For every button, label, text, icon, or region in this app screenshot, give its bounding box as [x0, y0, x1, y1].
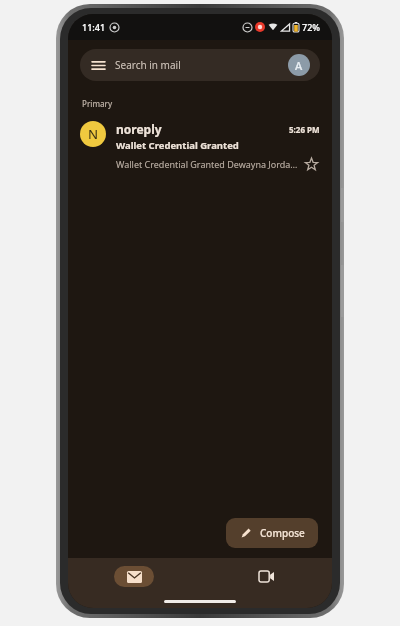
- staticText: Wallet Credential Granted: [116, 139, 239, 152]
- staticText: 72%: [302, 21, 320, 33]
- staticText: Primary: [82, 98, 113, 109]
- button[interactable]: Star: [302, 155, 320, 173]
- button[interactable]: Open navigation menu: [80, 49, 320, 81]
- button[interactable]: Mail: [114, 566, 154, 587]
- button[interactable]: N: [68, 117, 332, 177]
- staticText: N: [88, 125, 99, 143]
- staticText: A: [295, 58, 303, 73]
- button[interactable]: Open navigation menu: [90, 57, 106, 73]
- button[interactable]: Compose: [226, 518, 318, 548]
- staticText: noreply: [116, 121, 289, 137]
- button[interactable]: Meet: [246, 566, 286, 587]
- staticText: Compose: [260, 526, 305, 540]
- staticText: Search in mail: [115, 58, 181, 72]
- button[interactable]: Account: [288, 54, 310, 76]
- staticText: 5:26 PM: [289, 124, 320, 135]
- staticText: Wallet Credential Granted Dewayna Jordan…: [116, 158, 298, 170]
- staticText: 11:41: [82, 21, 106, 33]
